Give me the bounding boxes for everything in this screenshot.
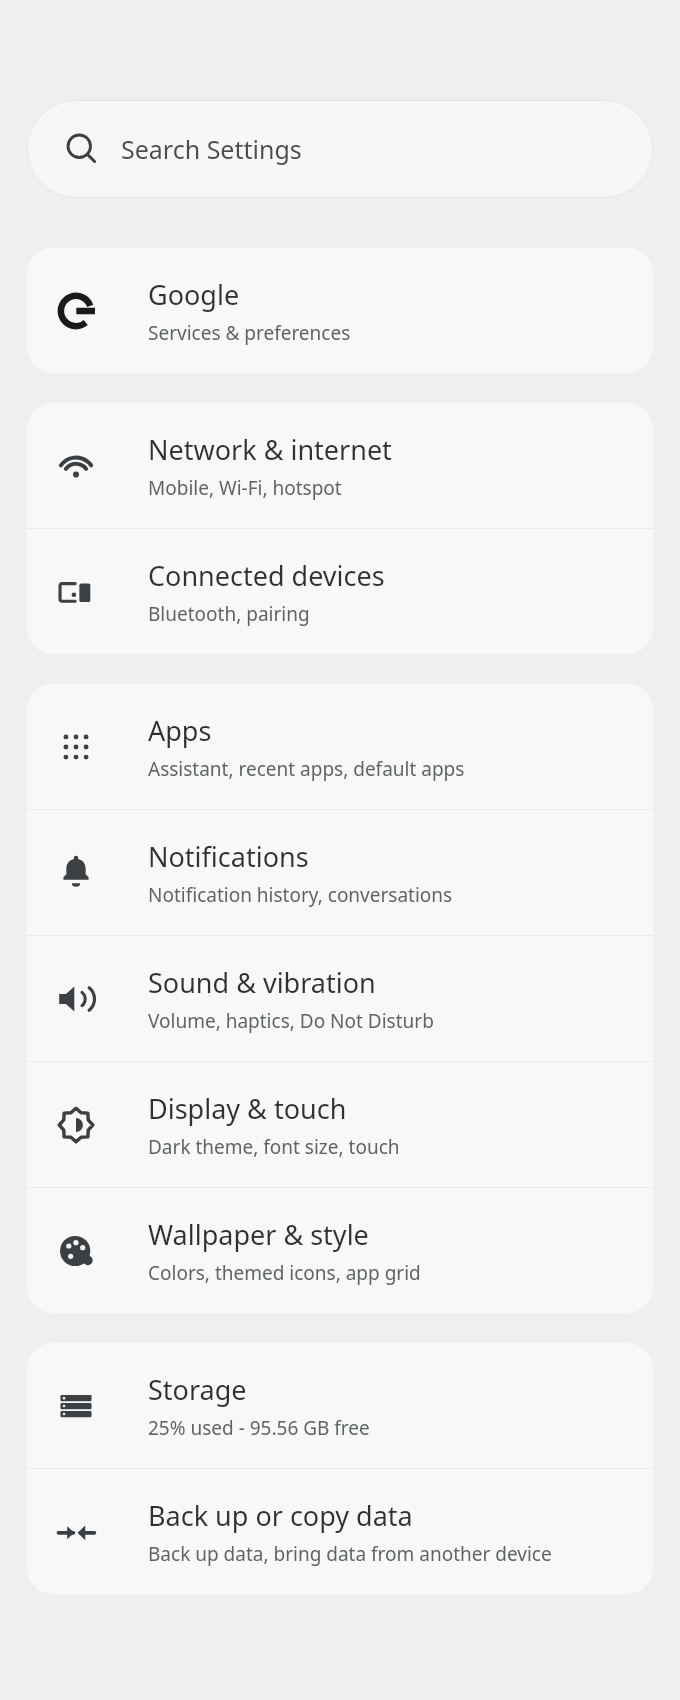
staticText: Google [148, 276, 240, 313]
button[interactable]: Sound & vibration [27, 936, 653, 1061]
staticText: Notifications [148, 838, 309, 875]
button[interactable]: Display & touch [27, 1062, 653, 1187]
staticText: Network & internet [148, 431, 392, 468]
staticText: Bluetooth, pairing [148, 601, 310, 627]
button[interactable]: Search [27, 100, 653, 198]
staticText: Mobile, Wi-Fi, hotspot [148, 475, 342, 501]
staticText: Apps [148, 712, 212, 749]
staticText: Wallpaper & style [148, 1216, 369, 1253]
staticText: Assistant, recent apps, default apps [148, 756, 465, 782]
staticText: 25% used - 95.56 GB free [148, 1415, 370, 1441]
staticText: Connected devices [148, 557, 385, 594]
button[interactable]: Wallpaper & style [27, 1188, 653, 1313]
staticText: Storage [148, 1371, 247, 1408]
button[interactable]: Google [27, 248, 653, 373]
button[interactable]: Notifications [27, 810, 653, 935]
button[interactable]: Connected devices [27, 529, 653, 654]
button[interactable]: Network & internet [27, 403, 653, 528]
staticText: Back up or copy data [148, 1497, 413, 1534]
staticText: Volume, haptics, Do Not Disturb [148, 1008, 434, 1034]
staticText: Services & preferences [148, 320, 351, 346]
staticText: Colors, themed icons, app grid [148, 1260, 421, 1286]
staticText: Display & touch [148, 1090, 347, 1127]
staticText: Sound & vibration [148, 964, 376, 1001]
staticText: Dark theme, font size, touch [148, 1134, 400, 1160]
staticText: Notification history, conversations [148, 882, 453, 908]
staticText: Back up data, bring data from another de… [148, 1541, 552, 1567]
button[interactable]: Apps [27, 684, 653, 809]
staticText: Search Settings [121, 132, 302, 166]
button[interactable]: Storage [27, 1343, 653, 1468]
other: Search [65, 132, 99, 166]
button[interactable]: Back up or copy data [27, 1469, 653, 1594]
